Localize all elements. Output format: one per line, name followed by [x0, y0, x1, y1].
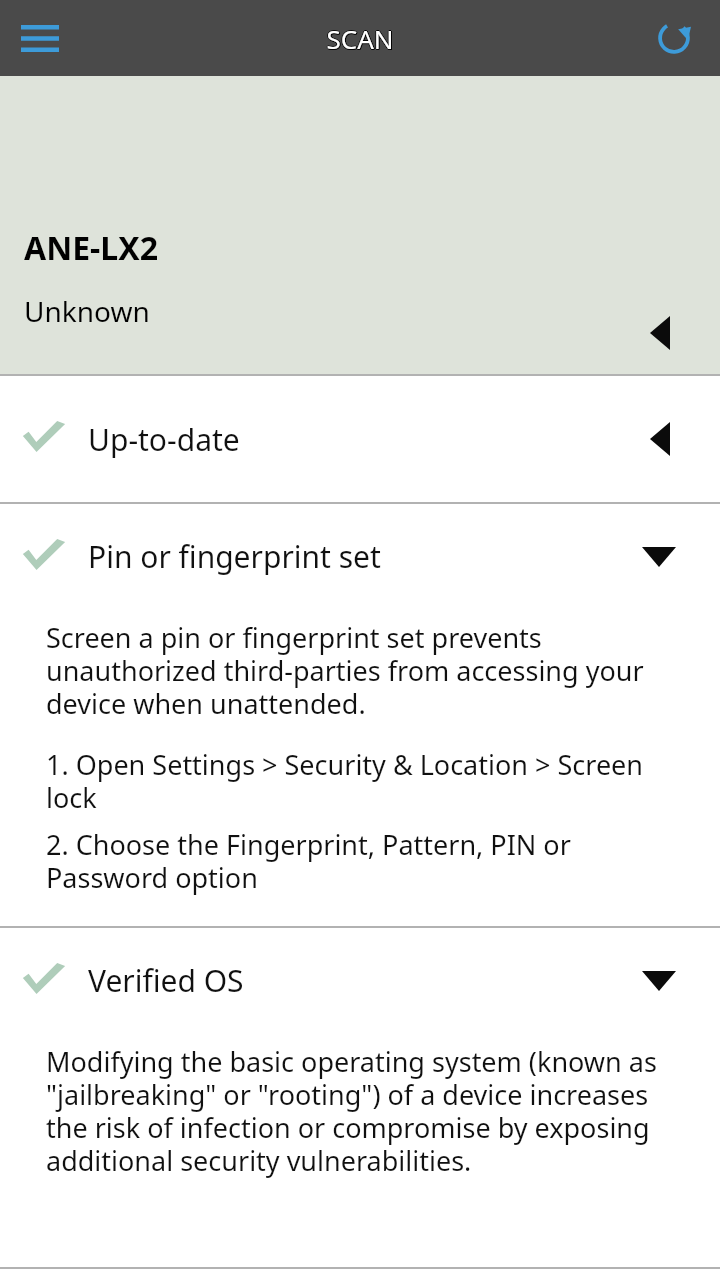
- staticText: 1. Open Settings > Security & Location >…: [46, 746, 696, 816]
- staticText: SCAN: [325, 21, 393, 56]
- staticText: Pin or fingerprint set: [88, 536, 381, 577]
- staticText: SCAN: [327, 21, 395, 56]
- button[interactable]: Up-to-date: [0, 376, 720, 502]
- staticText: SCAN: [326, 22, 394, 57]
- staticText: Screen a pin or fingerprint set prevents…: [46, 619, 696, 722]
- staticText: SCAN: [326, 21, 394, 56]
- staticText: 2. Choose the Fingerprint, Pattern, PIN …: [46, 826, 696, 896]
- button[interactable]: Refresh scan: [642, 6, 706, 70]
- staticText: SCAN: [326, 20, 394, 55]
- staticText: Up-to-date: [88, 419, 240, 460]
- button[interactable]: Open navigation menu: [6, 4, 74, 72]
- staticText: Modifying the basic operating system (kn…: [46, 1043, 696, 1179]
- staticText: SCAN: [327, 21, 395, 56]
- button[interactable]: ANE-LX2: [0, 76, 720, 374]
- staticText: SCAN: [327, 22, 395, 57]
- staticText: Verified OS: [88, 960, 244, 1001]
- button[interactable]: Pin or fingerprint set: [0, 504, 720, 609]
- staticText: Unknown: [24, 292, 150, 330]
- button[interactable]: Verified OS: [0, 928, 720, 1033]
- staticText: SCAN: [326, 22, 394, 57]
- staticText: ANE-LX2: [24, 226, 158, 270]
- staticText: SCAN: [326, 21, 394, 56]
